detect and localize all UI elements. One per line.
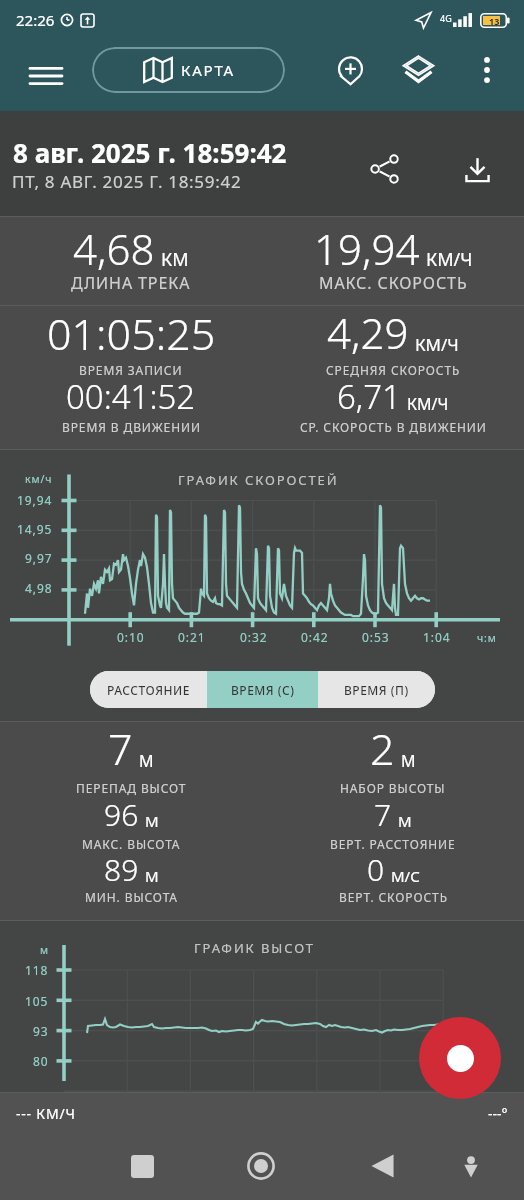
staticText: 0:21	[178, 629, 206, 645]
button[interactable]: Hide keyboard	[445, 1140, 497, 1192]
button[interactable]: ВРЕМЯ (П)	[318, 671, 435, 708]
staticText: 14,95	[17, 521, 53, 537]
staticText: 93	[33, 1023, 49, 1039]
staticText: СРЕДНЯЯ СКОРОСТЬ	[326, 362, 461, 378]
button[interactable]: Recent apps	[116, 1140, 168, 1192]
staticText: 4,68	[73, 220, 155, 277]
staticText: М	[401, 750, 416, 772]
button[interactable]: РАССТОЯНИЕ	[90, 671, 207, 708]
staticText: ВЕРТ. РАССТОЯНИЕ	[330, 836, 456, 852]
staticText: ПТ, 8 АВГ. 2025 Г. 18:59:42	[12, 170, 242, 193]
staticText: 96	[104, 794, 139, 835]
staticText: 0:42	[301, 629, 329, 645]
staticText: 105	[25, 993, 49, 1009]
button[interactable]: Add waypoint	[325, 45, 375, 95]
staticText: ВРЕМЯ В ДВИЖЕНИИ	[62, 419, 201, 435]
button[interactable]: More options	[462, 45, 512, 95]
staticText: М	[398, 811, 412, 831]
staticText: КАРТА	[181, 60, 235, 80]
staticText: 19,94	[314, 220, 420, 277]
staticText: КМ/Ч	[407, 393, 449, 415]
button[interactable]: Home	[235, 1140, 287, 1192]
staticText: км/ч	[25, 472, 53, 486]
button[interactable]: КАРТА	[92, 47, 285, 93]
staticText: 80	[33, 1053, 49, 1069]
staticText: 7	[374, 794, 392, 835]
staticText: М	[145, 811, 159, 831]
staticText: МАКС. ВЫСОТА	[82, 836, 181, 852]
staticText: ч:м	[477, 631, 497, 645]
staticText: --- КМ/Ч	[16, 1104, 76, 1123]
staticText: МАКС. СКОРОСТЬ	[319, 272, 468, 294]
button[interactable]: ВРЕМЯ (С)	[207, 671, 318, 708]
staticText: 01:05:25	[47, 304, 216, 363]
staticText: М	[139, 750, 154, 772]
staticText: ДЛИНА ТРЕКА	[71, 272, 191, 294]
staticText: 2	[370, 719, 395, 778]
staticText: СР. СКОРОСТЬ В ДВИЖЕНИИ	[300, 419, 487, 435]
staticText: 22:26	[16, 10, 55, 30]
staticText: НАБОР ВЫСОТЫ	[340, 780, 446, 796]
staticText: ГРАФИК СКОРОСТЕЙ	[178, 471, 339, 489]
staticText: 89	[104, 849, 139, 890]
staticText: 0:10	[117, 629, 145, 645]
button[interactable]: Share	[359, 143, 411, 195]
button[interactable]: Download	[451, 143, 503, 195]
staticText: 9,97	[25, 550, 53, 566]
staticText: 4,29	[327, 304, 409, 361]
staticText: 1:04	[423, 629, 451, 645]
button[interactable]: Start recording	[419, 1017, 501, 1099]
staticText: ВРЕМЯ (С)	[231, 682, 295, 698]
staticText: РАССТОЯНИЕ	[107, 682, 190, 698]
staticText: КМ	[161, 247, 189, 272]
staticText: 0:32	[240, 629, 268, 645]
staticText: м	[40, 943, 49, 957]
button[interactable]: Back	[356, 1140, 408, 1192]
staticText: ---°	[488, 1104, 508, 1123]
staticText: 118	[25, 962, 49, 978]
staticText: 4G	[440, 12, 452, 24]
button[interactable]: Menu	[21, 51, 70, 100]
staticText: ГРАФИК ВЫСОТ	[194, 939, 315, 957]
staticText: 6,71	[337, 374, 401, 419]
staticText: 19,94	[17, 492, 53, 508]
button[interactable]: Layers	[393, 44, 443, 94]
staticText: М/С	[391, 866, 420, 886]
staticText: 7	[108, 719, 133, 778]
staticText: КМ/Ч	[415, 333, 459, 356]
staticText: ВЕРТ. СКОРОСТЬ	[339, 889, 448, 905]
staticText: М	[145, 866, 159, 886]
staticText: 00:41:52	[66, 374, 196, 419]
staticText: ВРЕМЯ ЗАПИСИ	[79, 362, 183, 378]
staticText: ВРЕМЯ (П)	[344, 682, 409, 698]
staticText: МИН. ВЫСОТА	[85, 889, 178, 905]
staticText: КМ/Ч	[426, 247, 473, 272]
staticText: 0:53	[362, 629, 390, 645]
staticText: 4,98	[25, 580, 53, 596]
staticText: 0	[367, 849, 385, 890]
staticText: ПЕРЕПАД ВЫСОТ	[76, 780, 187, 796]
staticText: 13	[489, 15, 500, 27]
staticText: 8 авг. 2025 г. 18:59:42	[13, 135, 287, 170]
